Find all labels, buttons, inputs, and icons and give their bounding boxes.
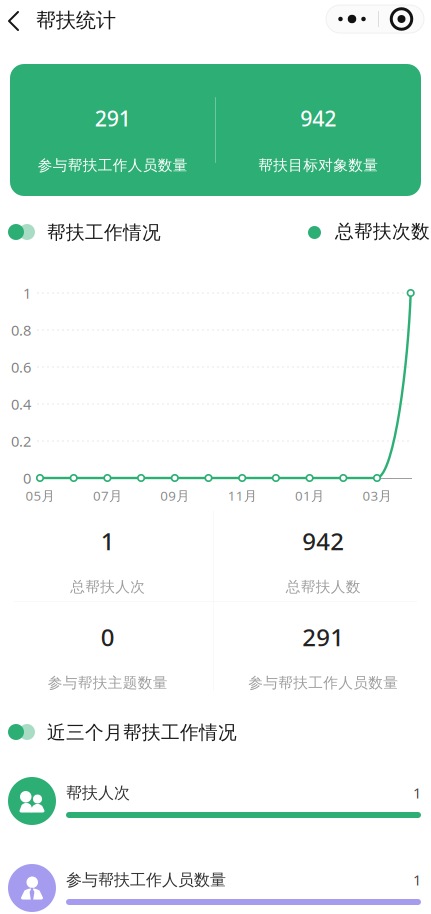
staticText: 0.4 [11,394,31,414]
staticText: 1 [413,783,421,803]
staticText: 11月 [228,487,257,504]
staticText: 942 [302,525,344,557]
button[interactable]: Close mini program [379,5,424,33]
staticText: 帮扶统计 [36,8,116,33]
staticText: 07月 [93,487,122,504]
staticText: 总帮扶人数 [286,578,361,596]
staticText: 参与帮扶工作人员数量 [38,156,188,174]
staticText: 0.8 [11,320,31,340]
staticText: 05月 [25,487,54,504]
staticText: 291 [302,621,344,653]
staticText: 0.6 [11,357,31,377]
button[interactable]: More options [326,5,378,33]
staticText: 01月 [295,487,324,504]
staticText: 942 [300,104,336,132]
staticText: 总帮扶次数 [335,220,430,243]
staticText: 0.2 [11,431,31,451]
staticText: 总帮扶人次 [70,578,145,596]
button[interactable]: 帮扶人次 [0,777,431,826]
staticText: 1 [413,870,421,890]
staticText: 帮扶人次 [66,783,130,803]
staticText: 1 [101,525,115,557]
staticText: 1 [23,283,31,303]
staticText: 参与帮扶工作人员数量 [248,674,398,692]
button[interactable]: Back [0,4,34,40]
staticText: 0 [101,621,115,653]
staticText: 帮扶工作情况 [47,221,161,244]
button[interactable]: 参与帮扶工作人员数量 [0,864,431,913]
staticText: 09月 [160,487,189,504]
staticText: 近三个月帮扶工作情况 [47,721,237,744]
staticText: 参与帮扶工作人员数量 [66,870,226,890]
staticText: 0 [23,468,31,488]
staticText: 03月 [362,487,391,504]
staticText: 参与帮扶主题数量 [48,674,168,692]
staticText: 291 [95,104,131,132]
staticText: 帮扶目标对象数量 [258,156,378,174]
